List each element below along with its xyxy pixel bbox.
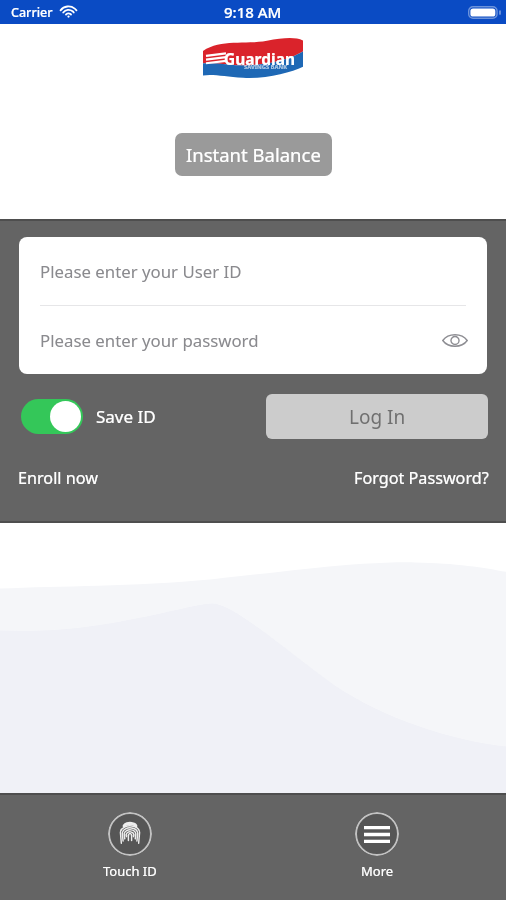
staticText: Touch ID xyxy=(103,862,157,880)
button[interactable]: Touch ID xyxy=(89,797,171,892)
button[interactable]: Show password xyxy=(439,324,471,356)
staticText: Forgot Password? xyxy=(354,467,489,489)
staticText: Guardian xyxy=(224,48,295,69)
staticText: SAVINGS BANK xyxy=(244,63,288,71)
staticText: Please enter your User ID xyxy=(40,260,242,283)
button[interactable]: Please enter your User ID xyxy=(19,237,487,305)
staticText: Carrier xyxy=(11,4,53,21)
button[interactable]: Log In xyxy=(266,394,488,439)
staticText: 9:18 AM xyxy=(224,2,282,22)
button[interactable]: Forgot Password? xyxy=(354,467,489,489)
button[interactable]: Save ID xyxy=(21,399,156,434)
button[interactable]: Enroll now xyxy=(18,467,98,489)
button[interactable]: More xyxy=(341,797,413,892)
staticText: Please enter your password xyxy=(40,329,259,352)
staticText: More xyxy=(361,862,394,880)
button[interactable]: Please enter your password xyxy=(19,306,487,374)
staticText: Log In xyxy=(349,404,406,430)
staticText: Save ID xyxy=(96,405,156,428)
button[interactable]: Instant Balance xyxy=(175,133,332,176)
staticText: Instant Balance xyxy=(186,142,321,167)
staticText: Enroll now xyxy=(18,467,98,489)
